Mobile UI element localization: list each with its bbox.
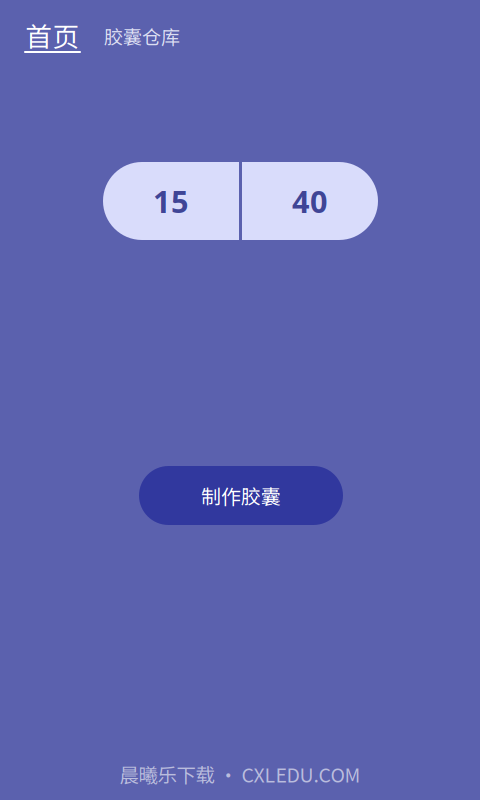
staticText: 晨曦乐下载 • CXLEDU.COM [119,760,360,788]
button[interactable]: 40 [242,162,378,240]
staticText: 制作胶囊 [201,481,281,510]
button[interactable]: 制作胶囊 [139,466,343,525]
button[interactable]: 胶囊仓库 [104,0,180,72]
button[interactable]: 15 [103,162,239,240]
staticText: 胶囊仓库 [104,22,180,50]
button[interactable]: 首页 [24,0,81,72]
staticText: 首页 [25,16,79,54]
staticText: 15 [153,181,189,221]
staticText: 40 [292,181,328,221]
